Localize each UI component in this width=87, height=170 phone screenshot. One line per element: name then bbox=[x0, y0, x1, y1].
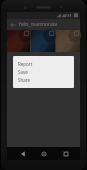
button[interactable]: Recents bbox=[59, 147, 72, 160]
button[interactable]: Navigate up bbox=[7, 19, 18, 30]
staticText: Report bbox=[18, 61, 33, 67]
button[interactable]: Save bbox=[13, 68, 74, 76]
button[interactable]: Photo bbox=[56, 30, 80, 52]
button[interactable]: Home bbox=[37, 147, 50, 160]
button[interactable]: Photo bbox=[7, 30, 30, 52]
staticText: Share bbox=[18, 77, 31, 83]
button[interactable]: Back bbox=[16, 147, 29, 160]
staticText: felis_marmorata bbox=[19, 21, 58, 28]
button[interactable]: Photo bbox=[31, 30, 55, 52]
staticText: Save bbox=[18, 69, 28, 75]
button[interactable]: Report bbox=[13, 60, 74, 68]
button[interactable]: Share bbox=[13, 76, 74, 84]
